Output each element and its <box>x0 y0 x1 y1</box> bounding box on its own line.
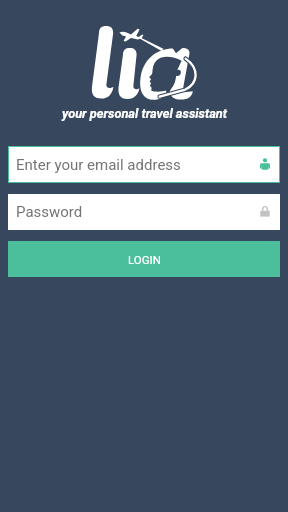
staticText: your personal travel assistant <box>62 106 227 121</box>
button[interactable]: LOGIN <box>8 241 280 277</box>
staticText: LOGIN <box>128 253 161 266</box>
staticText: Enter your email address <box>16 156 181 174</box>
staticText: Password <box>16 203 83 221</box>
button[interactable]: Enter your email address <box>9 147 279 182</box>
button[interactable]: Password <box>8 194 280 230</box>
